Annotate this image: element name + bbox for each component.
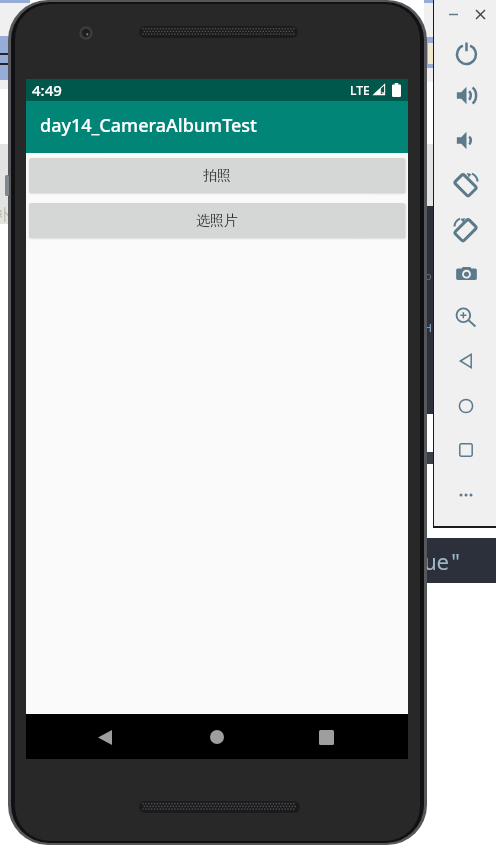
button[interactable]: Close <box>470 4 490 24</box>
staticText: LTE <box>350 82 370 98</box>
button[interactable]: 拍照 <box>29 158 405 193</box>
button[interactable]: Rotate right <box>445 163 487 205</box>
button[interactable]: Volume down <box>445 119 487 161</box>
staticText: 拍照 <box>203 167 231 185</box>
button[interactable]: Back <box>83 715 127 759</box>
button[interactable]: Zoom <box>445 296 487 338</box>
staticText: 选照片 <box>196 212 238 230</box>
button[interactable]: Recents <box>304 715 348 759</box>
button[interactable]: Screenshot <box>445 252 487 294</box>
staticText: 4:49 <box>32 80 62 100</box>
staticText: ue" <box>424 548 462 577</box>
button[interactable]: Overview <box>445 429 487 471</box>
button[interactable]: Power <box>445 31 487 73</box>
staticText: o <box>425 268 432 283</box>
button[interactable]: 选照片 <box>29 203 405 238</box>
button[interactable]: Minimize <box>443 4 463 24</box>
staticText: H <box>425 320 432 335</box>
staticText: 补 <box>0 205 10 225</box>
button[interactable]: Rotate left <box>445 208 487 250</box>
button[interactable]: Home <box>445 385 487 427</box>
staticText: day14_CameraAlbumTest <box>40 113 257 138</box>
button[interactable]: Volume up <box>445 74 487 116</box>
button[interactable]: More <box>445 474 487 516</box>
button[interactable]: Back <box>445 340 487 382</box>
button[interactable]: Home <box>195 715 239 759</box>
